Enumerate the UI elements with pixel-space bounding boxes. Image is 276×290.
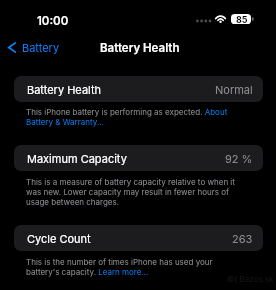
button[interactable]: This is the number of times iPhone has u… [26,257,245,277]
button[interactable]: This iPhone battery is performing as exp… [26,107,245,127]
staticText: Cycle Count [27,232,91,245]
other: Back [8,42,16,53]
staticText: Battery [22,41,60,54]
staticText: 85 [236,14,248,25]
staticText: This is the number of times iPhone has u… [26,257,245,277]
staticText: This iPhone battery is performing as exp… [26,107,245,127]
staticText: Maximum Capacity [27,152,127,165]
staticText: Normal [215,83,253,96]
staticText: ©( Bazos.sk [227,274,274,284]
button[interactable]: Cycle Count [14,225,263,251]
staticText: 10:00 [37,14,69,28]
staticText: Battery Health [27,83,101,96]
button[interactable]: Maximum Capacity [14,145,263,171]
staticText: 263 [232,232,253,245]
button[interactable]: Back [0,39,68,56]
staticText: This is a measure of battery capacity re… [26,177,245,207]
staticText: Battery Health [100,41,180,55]
staticText: 92 % [225,152,253,165]
button[interactable]: Battery Health [14,76,263,102]
